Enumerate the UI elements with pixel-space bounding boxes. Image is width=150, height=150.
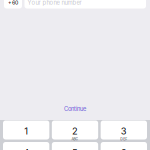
staticText: +60 xyxy=(8,0,18,6)
staticText: 5 xyxy=(72,147,78,150)
button[interactable]: 5 xyxy=(52,142,98,150)
staticText: 2 xyxy=(72,125,78,137)
staticText: 1 xyxy=(24,125,28,137)
staticText: ABC xyxy=(71,137,78,141)
staticText: 3 xyxy=(121,125,127,137)
button[interactable]: 4 xyxy=(3,142,49,150)
button[interactable]: Continue xyxy=(58,104,92,114)
staticText: 6 xyxy=(121,147,127,150)
button[interactable]: 2 xyxy=(52,120,98,139)
button[interactable]: 6 xyxy=(101,142,147,150)
staticText xyxy=(26,137,27,141)
staticText: 4 xyxy=(23,147,29,150)
staticText: Continue xyxy=(64,105,86,112)
staticText: Your phone number xyxy=(27,0,81,6)
button[interactable]: 3 xyxy=(101,120,147,139)
button[interactable]: 1 xyxy=(3,120,49,139)
button[interactable]: +60 xyxy=(4,0,22,8)
staticText: DEF xyxy=(120,137,127,141)
